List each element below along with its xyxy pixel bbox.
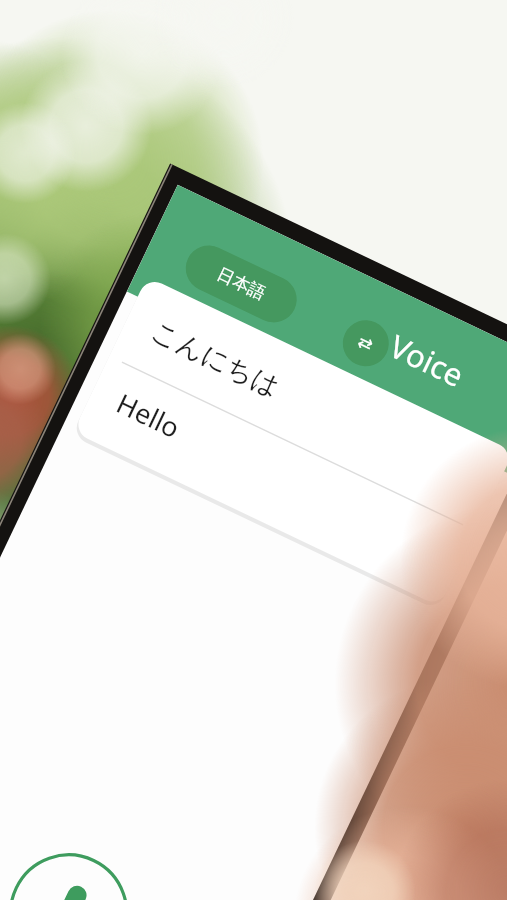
button[interactable] (0, 0, 507, 900)
other: Voice translator app on a phone (0, 0, 507, 900)
